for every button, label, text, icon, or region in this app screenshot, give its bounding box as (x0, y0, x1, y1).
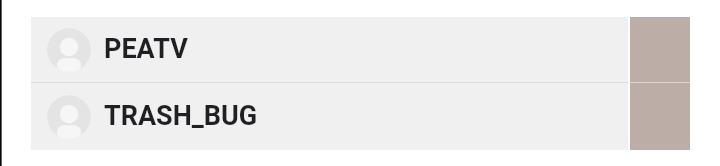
other: Profile picture (47, 95, 91, 139)
other: Profile picture (47, 28, 91, 72)
button[interactable]: Profile picture (0, 83, 720, 150)
button[interactable]: Profile picture (0, 17, 720, 82)
staticText: PEATV (104, 33, 188, 65)
staticText: TRASH_BUG (104, 100, 258, 132)
